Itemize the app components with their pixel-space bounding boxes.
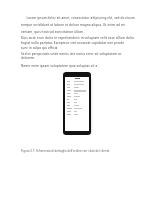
staticText: fugiat nulla pariatur. Excepteur sint oc… — [21, 41, 125, 45]
staticText: veniam, quis nostrud exercitation ullam. — [21, 30, 84, 34]
staticText: dolorem. — [21, 56, 35, 60]
staticText: Figura 3.1: Schermata di dettaglio dell'… — [21, 149, 110, 153]
staticText: Nemo enim ipsam voluptatem quia voluptas… — [21, 64, 98, 68]
button[interactable]: Order detail screenshot — [63, 72, 91, 135]
staticText: Duis aute irure dolor in reprehenderit i… — [21, 36, 135, 40]
staticText: tempor incididunt ut labore et dolore ma… — [21, 23, 125, 27]
staticText: Lorem ipsum dolor sit amet, consectetur … — [21, 16, 135, 20]
staticText: sunt in culpa qui officia. — [21, 46, 59, 50]
staticText: Sed ut perspiciatis unde omnis iste natu… — [21, 52, 122, 56]
